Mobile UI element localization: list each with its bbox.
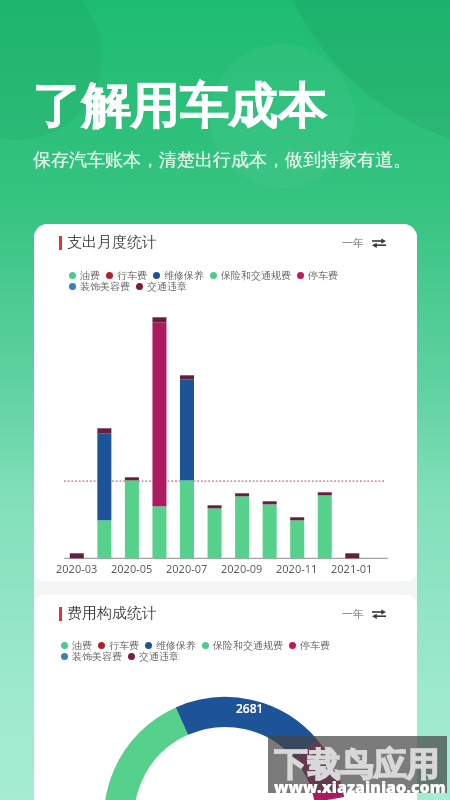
- staticText: 2020-11: [276, 561, 318, 576]
- other: Switch range: [372, 607, 386, 621]
- staticText: 2020-03: [56, 561, 98, 576]
- other: Switch range: [372, 236, 386, 250]
- staticText: 油费: [72, 639, 92, 652]
- staticText: 行车费: [117, 269, 147, 282]
- staticText: 交通违章: [147, 280, 187, 293]
- staticText: 行车费: [109, 639, 139, 652]
- staticText: 2020-07: [166, 561, 208, 576]
- staticText: 保险和交通规费: [213, 639, 283, 652]
- staticText: 装饰美容费: [80, 280, 130, 293]
- staticText: 2681: [236, 700, 264, 716]
- staticText: 了解用车成本: [32, 76, 326, 138]
- staticText: www.xiazainiao.com: [274, 776, 446, 798]
- staticText: 维修保养: [164, 269, 204, 282]
- staticText: 停车费: [308, 269, 338, 282]
- staticText: 交通违章: [139, 650, 179, 663]
- staticText: 一年: [342, 236, 364, 250]
- staticText: 维修保养: [156, 639, 196, 652]
- staticText: 保存汽车账本，清楚出行成本，做到持家有道。: [33, 149, 411, 172]
- staticText: 一年: [342, 607, 364, 621]
- staticText: 油费: [80, 269, 100, 282]
- staticText: 2020-09: [221, 561, 263, 576]
- staticText: 保险和交通规费: [221, 269, 291, 282]
- staticText: 支出月度统计: [67, 233, 157, 252]
- staticText: 费用构成统计: [67, 604, 157, 623]
- staticText: 下载鸟应用: [274, 744, 439, 786]
- staticText: 2021-01: [331, 561, 373, 576]
- button[interactable]: 一年: [342, 232, 386, 254]
- staticText: 装饰美容费: [72, 650, 122, 663]
- staticText: 2020-05: [111, 561, 153, 576]
- staticText: 停车费: [300, 639, 330, 652]
- button[interactable]: 一年: [342, 603, 386, 625]
